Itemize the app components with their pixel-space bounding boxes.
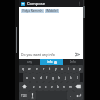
button[interactable]: s [30, 73, 37, 82]
button[interactable]: Info [63, 59, 83, 65]
staticText: o [73, 67, 75, 71]
staticText: e [36, 67, 38, 71]
button[interactable]: p [77, 65, 83, 73]
staticText: z [33, 85, 35, 89]
button[interactable]: a [23, 73, 30, 82]
button[interactable]: z [30, 82, 37, 91]
button[interactable]: r [40, 65, 47, 73]
staticText: h [58, 76, 60, 80]
button[interactable]: i [65, 65, 71, 73]
staticText: Vidya Ramesh [22, 9, 43, 13]
button[interactable]: x [37, 82, 43, 91]
staticText: p [79, 67, 81, 71]
staticText: Do you want any info [21, 52, 55, 57]
staticText: n [63, 85, 65, 89]
staticText: k [70, 76, 72, 80]
staticText: w [28, 67, 31, 71]
button[interactable]: o [71, 65, 77, 73]
button[interactable]: Do you want any info [21, 49, 73, 59]
button[interactable]: Voice input [29, 91, 36, 100]
staticText: d [40, 76, 42, 80]
staticText: b [57, 85, 59, 89]
staticText: . [70, 94, 71, 98]
button[interactable]: n [61, 82, 67, 91]
staticText: r [43, 67, 45, 71]
staticText: ?123 [21, 94, 27, 98]
button[interactable]: l [74, 73, 80, 82]
button[interactable]: h [56, 73, 62, 82]
button[interactable]: Send [74, 51, 81, 58]
button[interactable]: y [53, 65, 59, 73]
button[interactable]: j [62, 73, 68, 82]
staticText: any [27, 60, 33, 64]
button[interactable]: More options [76, 0, 82, 7]
button[interactable]: ?123 [19, 91, 29, 100]
staticText: c [45, 85, 47, 89]
staticText: a [26, 76, 28, 80]
staticText: x [39, 85, 41, 89]
button[interactable]: m [67, 82, 73, 91]
staticText: l [77, 76, 78, 80]
button[interactable]: c [43, 82, 49, 91]
staticText: q [22, 67, 24, 71]
button[interactable]: q [19, 65, 26, 73]
button[interactable]: Enter [74, 91, 83, 100]
staticText: (Mobile) [46, 9, 58, 13]
staticText: g [52, 76, 54, 80]
staticText: u [61, 67, 63, 71]
button[interactable]: v [49, 82, 55, 91]
staticText: j [65, 76, 66, 80]
staticText: Info [70, 60, 76, 64]
button[interactable]: b [55, 82, 61, 91]
button[interactable]: k [68, 73, 74, 82]
button[interactable]: Vidya Ramesh [19, 7, 83, 14]
staticText: v [51, 85, 53, 89]
staticText: info [47, 60, 53, 64]
button[interactable]: any [19, 59, 40, 65]
button[interactable]: f [44, 73, 50, 82]
staticText: i [68, 67, 69, 71]
staticText: s [33, 76, 35, 80]
button[interactable]: . [67, 91, 74, 100]
button[interactable]: t [47, 65, 53, 73]
button[interactable]: u [59, 65, 65, 73]
button[interactable]: Backspace [73, 82, 83, 91]
button[interactable]: g [50, 73, 56, 82]
button[interactable]: d [37, 73, 44, 82]
button[interactable]: Messaging [19, 0, 83, 7]
staticText: f [46, 76, 48, 80]
staticText: y [55, 67, 57, 71]
staticText: Compose [27, 1, 45, 6]
button[interactable]: w [26, 65, 33, 73]
button[interactable]: e [33, 65, 40, 73]
button[interactable]: Shift [19, 82, 30, 91]
staticText: m [69, 85, 72, 89]
other: Messaging [21, 2, 25, 6]
button[interactable]: info [40, 59, 63, 65]
staticText: t [49, 67, 51, 71]
